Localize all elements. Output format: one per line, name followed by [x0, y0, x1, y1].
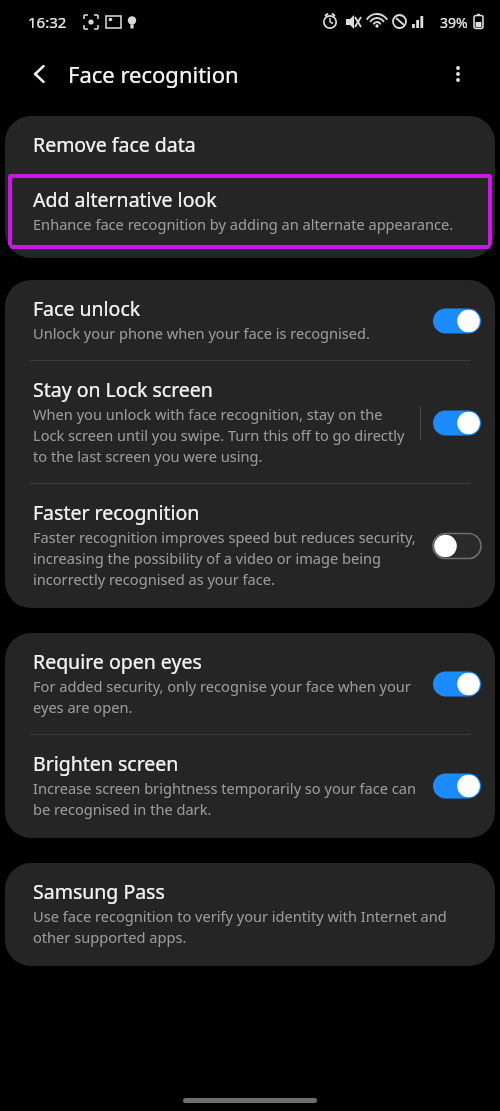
button[interactable]: Add alternative look	[8, 174, 492, 249]
button[interactable]: On	[433, 670, 481, 698]
button[interactable]: Faster recognition	[5, 484, 495, 608]
staticText: Add alternative look	[33, 188, 217, 212]
staticText: When you unlock with face recognition, s…	[33, 404, 408, 467]
button[interactable]: More options	[436, 52, 480, 96]
staticText: Enhance face recognition by adding an al…	[33, 214, 454, 235]
button[interactable]: Off	[433, 532, 481, 560]
button[interactable]: On	[433, 307, 481, 335]
button[interactable]: Stay on Lock screen	[5, 361, 495, 483]
staticText: Face unlock	[33, 297, 141, 321]
button[interactable]: Back	[18, 52, 62, 96]
staticText: Face recognition	[68, 59, 239, 89]
staticText: 39%	[440, 13, 468, 32]
staticText: 16:32	[28, 12, 67, 32]
staticText: Increase screen brightness temporarily s…	[33, 778, 421, 820]
button[interactable]: Remove face data	[5, 116, 495, 174]
button[interactable]: Face unlock	[5, 280, 495, 360]
staticText: Stay on Lock screen	[33, 378, 213, 402]
staticText: Faster recognition improves speed but re…	[33, 527, 421, 590]
button[interactable]: On	[433, 772, 481, 800]
staticText: Unlock your phone when your face is reco…	[33, 323, 370, 344]
staticText: For added security, only recognise your …	[33, 676, 421, 718]
button[interactable]: Samsung Pass	[5, 863, 495, 966]
staticText: Require open eyes	[33, 650, 202, 674]
button[interactable]: Brighten screen	[5, 735, 495, 838]
staticText: Brighten screen	[33, 752, 179, 776]
staticText: Use face recognition to verify your iden…	[33, 906, 475, 948]
staticText: Remove face data	[33, 133, 196, 157]
button[interactable]: Require open eyes	[5, 633, 495, 734]
staticText: Faster recognition	[33, 501, 200, 525]
staticText: Samsung Pass	[33, 880, 165, 904]
button[interactable]: On	[433, 409, 481, 437]
